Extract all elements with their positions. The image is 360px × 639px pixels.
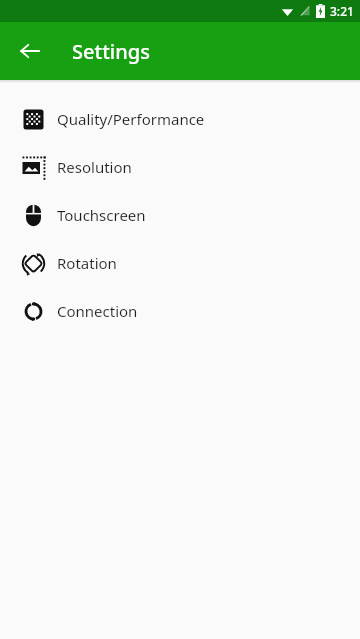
staticText: Settings	[72, 38, 150, 65]
staticText: Rotation	[57, 253, 117, 273]
button[interactable]: Resolution	[0, 143, 360, 191]
button[interactable]: Rotation	[0, 239, 360, 287]
staticText: Quality/Performance	[57, 109, 205, 129]
staticText: Resolution	[57, 157, 132, 177]
button[interactable]: Back	[8, 29, 52, 73]
staticText: Connection	[57, 301, 138, 321]
button[interactable]: Quality/Performance	[0, 95, 360, 143]
staticText: Touchscreen	[57, 205, 146, 225]
staticText: 3:21	[330, 3, 354, 19]
button[interactable]: Touchscreen	[0, 191, 360, 239]
button[interactable]: Connection	[0, 287, 360, 335]
